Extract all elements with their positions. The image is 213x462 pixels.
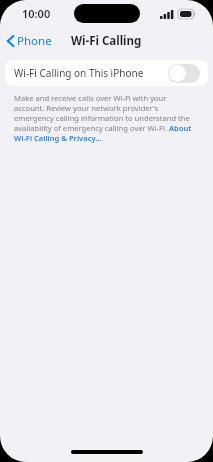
button[interactable]: Make and receive calls over Wi-Fi with y… <box>14 93 197 143</box>
button[interactable]: Wi-Fi Calling on This iPhone <box>5 60 208 86</box>
staticText: 10:00 <box>22 6 51 21</box>
button[interactable]: Wi-Fi Calling on This iPhone toggle, off <box>168 64 200 83</box>
staticText: Wi-Fi Calling on This iPhone <box>14 66 168 80</box>
staticText: Wi-Fi Calling <box>71 33 142 49</box>
staticText: Phone <box>17 33 52 49</box>
button[interactable]: Phone <box>0 30 58 52</box>
